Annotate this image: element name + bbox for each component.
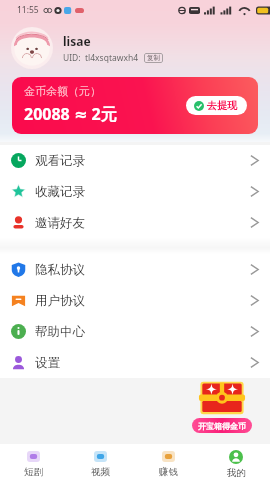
button[interactable]: 收藏记录 <box>0 176 270 207</box>
staticText: 短剧 <box>24 466 43 478</box>
staticText: 复制 <box>147 54 160 62</box>
staticText: 视频 <box>91 466 110 478</box>
button[interactable]: 赚钱 <box>134 444 202 480</box>
button[interactable]: 我的 <box>202 444 270 480</box>
staticText: 开宝箱得金币 <box>198 421 246 431</box>
staticText: 赚钱 <box>159 466 178 478</box>
staticText: 我的 <box>227 467 246 479</box>
button[interactable]: 设置 <box>0 347 270 378</box>
button[interactable]: 短剧 <box>0 444 67 480</box>
staticText: 金币余额（元） <box>24 84 101 98</box>
button[interactable]: 帮助中心 <box>0 316 270 347</box>
button[interactable]: 复制 <box>144 53 163 63</box>
staticText: 11:55 <box>17 4 39 16</box>
staticText: 隐私协议 <box>35 262 85 278</box>
button[interactable]: 去提现 <box>186 96 247 115</box>
staticText: 设置 <box>35 355 60 371</box>
button[interactable]: 视频 <box>67 444 134 480</box>
staticText: 观看记录 <box>35 153 85 169</box>
staticText: 去提现 <box>207 99 237 112</box>
staticText: 邀请好友 <box>35 215 85 231</box>
staticText: 收藏记录 <box>35 184 85 200</box>
staticText: UID: tl4xsqtawxh4 <box>63 52 139 64</box>
staticText: 20088 ≈ 2元 <box>24 103 117 125</box>
button[interactable]: 隐私协议 <box>0 254 270 285</box>
staticText: lisae <box>63 33 91 49</box>
button[interactable]: 邀请好友 <box>0 207 270 238</box>
button[interactable]: 用户协议 <box>0 285 270 316</box>
button[interactable]: 头像 <box>11 27 53 69</box>
staticText: 用户协议 <box>35 293 85 309</box>
button[interactable]: 观看记录 <box>0 145 270 176</box>
staticText: 帮助中心 <box>35 324 85 340</box>
button[interactable]: 开宝箱得金币 <box>192 381 252 433</box>
